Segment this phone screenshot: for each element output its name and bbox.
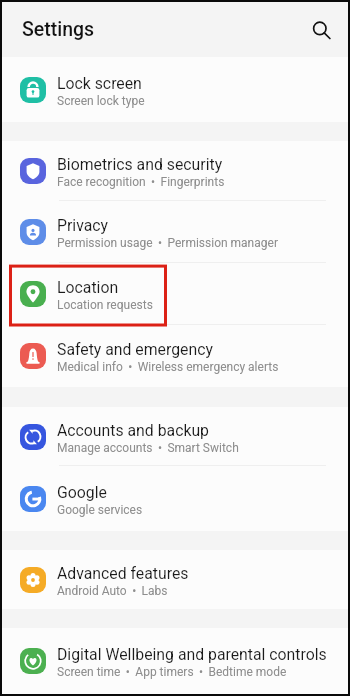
- staticText: Screen lock type: [57, 94, 145, 108]
- staticText: Manage accounts • Smart Switch: [57, 441, 239, 455]
- staticText: Medical info • Wireless emergency alerts: [57, 360, 279, 374]
- button[interactable]: Google: [2, 466, 348, 531]
- staticText: Permission usage • Permission manager: [57, 236, 278, 250]
- button[interactable]: Location: [2, 263, 348, 325]
- staticText: Settings: [22, 18, 95, 41]
- staticText: Location: [57, 278, 119, 297]
- button[interactable]: Privacy: [2, 201, 348, 263]
- staticText: Advanced features: [57, 564, 189, 583]
- staticText: Google services: [57, 503, 143, 517]
- staticText: Privacy: [57, 216, 109, 235]
- staticText: Biometrics and security: [57, 155, 223, 174]
- staticText: Lock screen: [57, 74, 142, 93]
- staticText: Face recognition • Fingerprints: [57, 175, 225, 189]
- button[interactable]: Accounts and backup: [2, 407, 348, 466]
- staticText: Google: [57, 483, 107, 502]
- staticText: Digital Wellbeing and parental controls: [57, 645, 327, 664]
- button[interactable]: Advanced features: [2, 550, 348, 609]
- staticText: Safety and emergency: [57, 340, 213, 359]
- button[interactable]: Biometrics and security: [2, 141, 348, 201]
- staticText: Location requests: [57, 298, 153, 312]
- button[interactable]: Lock screen: [2, 57, 348, 122]
- button[interactable]: Digital Wellbeing and parental controls: [2, 628, 348, 694]
- button[interactable]: Safety and emergency: [2, 325, 348, 387]
- staticText: Accounts and backup: [57, 421, 209, 440]
- button[interactable]: Search: [304, 13, 338, 47]
- staticText: Android Auto • Labs: [57, 584, 168, 598]
- staticText: Screen time • App timers • Bedtime mode: [57, 665, 287, 679]
